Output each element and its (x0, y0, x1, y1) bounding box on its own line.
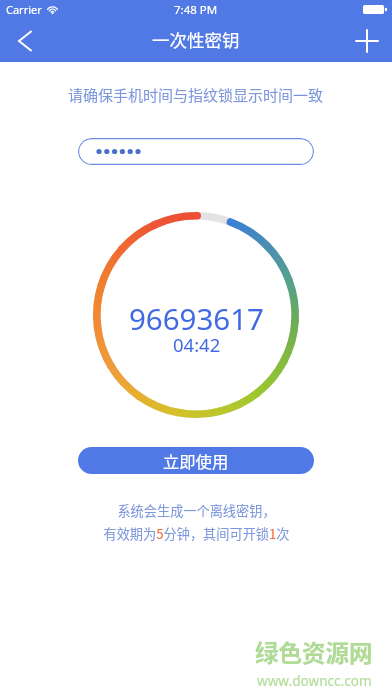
staticText: 一次性密钥 (152, 27, 240, 52)
staticText: Carrier (6, 2, 42, 17)
button[interactable]: Back (0, 18, 46, 60)
staticText: 绿色资源网 (255, 635, 373, 669)
staticText: 系统会生成一个离线密钥， 有效期为5分钟，其间可开锁1次 (103, 501, 290, 542)
staticText: 请确保手机时间与指纹锁显示时间一致 (68, 84, 324, 106)
button[interactable]: 立即使用 (78, 447, 314, 474)
button[interactable] (78, 138, 314, 165)
staticText: 7:48 PM (174, 2, 218, 18)
staticText: 96693617 (129, 298, 264, 338)
staticText: 04:42 (173, 332, 221, 357)
staticText: www.downcc.com (257, 671, 372, 690)
button[interactable]: Add (342, 18, 392, 60)
staticText: 立即使用 (163, 449, 229, 473)
